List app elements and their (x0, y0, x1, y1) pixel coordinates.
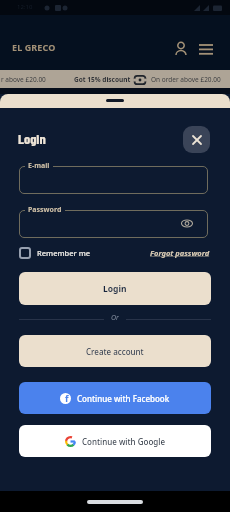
staticText: E-mail (28, 161, 50, 171)
button[interactable] (19, 166, 208, 194)
button[interactable]: Continue with Google (19, 425, 211, 457)
staticText: Password (28, 205, 62, 215)
staticText: Continue with Facebook (77, 393, 170, 404)
staticText: r above £20.00 (1, 75, 46, 84)
button[interactable] (172, 38, 190, 56)
staticText: Login (103, 283, 127, 295)
staticText: On order above £20.00 (151, 75, 221, 84)
staticText: EL GRECO (12, 41, 56, 53)
button[interactable]: Create account (19, 335, 211, 367)
staticText: Login (18, 130, 46, 147)
staticText: Create account (86, 346, 144, 357)
staticText: Continue with Google (82, 436, 165, 447)
staticText: f (65, 393, 69, 403)
staticText: Remember me (37, 248, 91, 258)
staticText: Or (111, 313, 119, 323)
button[interactable]: Forgot password (150, 248, 210, 258)
button[interactable]: Remember me (19, 246, 91, 260)
button[interactable] (196, 38, 216, 58)
staticText: Got 15% discount (74, 75, 131, 84)
button[interactable] (19, 210, 208, 238)
staticText: 12:10 (17, 3, 33, 11)
button[interactable]: f (19, 382, 211, 414)
button[interactable] (183, 126, 210, 153)
button[interactable]: Login (19, 272, 211, 305)
